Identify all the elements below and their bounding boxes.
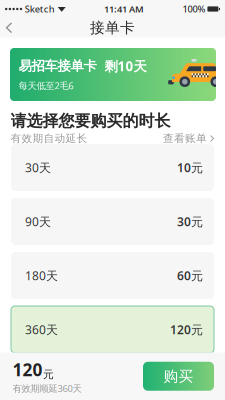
staticText: 90天 bbox=[25, 213, 51, 229]
staticText: 360天 bbox=[25, 321, 58, 337]
staticText: 接单卡 bbox=[90, 19, 135, 37]
button[interactable]: 购买 bbox=[143, 362, 214, 391]
staticText: 易招车接单卡 bbox=[18, 58, 96, 74]
staticText: 60元 bbox=[177, 267, 203, 283]
staticText: 120 bbox=[12, 358, 42, 381]
staticText: 180天 bbox=[25, 267, 58, 283]
staticText: 有效期自动延长 bbox=[10, 132, 87, 145]
button[interactable]: Back bbox=[0, 18, 21, 37]
staticText: 11:41 AM bbox=[104, 3, 144, 15]
button[interactable]: 30天 bbox=[11, 144, 214, 191]
staticText: Sketch bbox=[25, 3, 55, 15]
staticText: 每天低至2毛6 bbox=[18, 79, 73, 92]
staticText: 购买 bbox=[163, 367, 193, 385]
button[interactable]: 180天 bbox=[11, 252, 214, 299]
staticText: 有效期顺延360天 bbox=[12, 382, 81, 394]
button[interactable]: 90天 bbox=[11, 198, 214, 245]
staticText: 10元 bbox=[177, 159, 203, 175]
staticText: 剩10天 bbox=[104, 57, 146, 75]
button[interactable]: 查看账单 bbox=[163, 132, 214, 145]
staticText: 100% bbox=[182, 3, 205, 15]
staticText: 元 bbox=[43, 368, 54, 381]
staticText: 30天 bbox=[25, 159, 51, 175]
button[interactable]: 360天 bbox=[11, 306, 214, 353]
staticText: 120元 bbox=[170, 321, 203, 337]
staticText: 30元 bbox=[177, 213, 203, 229]
staticText: 查看账单 bbox=[163, 132, 207, 145]
staticText: 请选择您要购买的时长 bbox=[10, 111, 170, 131]
